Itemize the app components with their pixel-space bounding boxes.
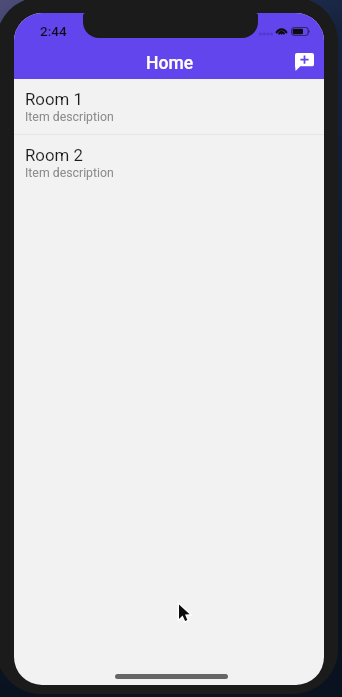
staticText: Room 1 [25, 89, 83, 109]
staticText: 2:44 [40, 23, 67, 39]
button[interactable]: Room 2 [14, 135, 324, 191]
staticText: Item description [25, 110, 114, 124]
staticText: Item description [25, 166, 114, 180]
button[interactable]: New chat [291, 49, 317, 75]
staticText: Home [146, 53, 194, 74]
staticText: Room 2 [25, 145, 83, 165]
button[interactable]: Room 1 [14, 79, 324, 135]
